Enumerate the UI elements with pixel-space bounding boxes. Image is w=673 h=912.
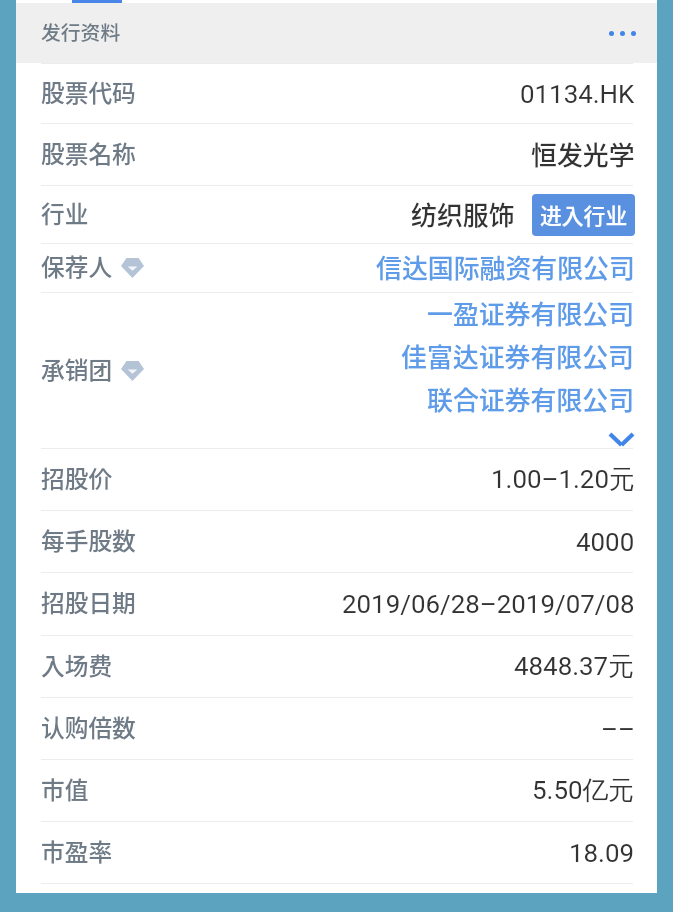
staticText: 纺织服饰 [411,195,515,233]
staticText: 保荐人 [41,249,113,283]
staticText: 招股日期 [41,585,136,619]
staticText: 招股价 [41,461,113,495]
staticText: 18.09 [569,838,635,868]
staticText: 进入行业 [540,199,628,231]
button[interactable]: 市值 [16,760,657,821]
button[interactable]: More options [609,31,657,36]
staticText: –– [601,714,635,744]
button[interactable]: 联合证券有限公司 [427,380,635,418]
staticText: 承销团 [41,352,113,386]
staticText: 市盈率 [41,834,113,868]
staticText: 每手股数 [41,523,136,557]
staticText: 入场费 [41,648,113,682]
staticText: 2019/06/28–2019/07/08 [342,589,635,619]
button[interactable]: 市盈率 [16,822,657,883]
staticText: 4000 [576,527,635,557]
staticText: 认购倍数 [41,710,136,744]
button[interactable]: 进入行业 [532,194,635,236]
button[interactable]: 每手股数 [16,511,657,572]
staticText: 股票名称 [41,136,136,170]
button[interactable]: 行业 [16,186,657,243]
staticText: 5.50亿元 [532,774,635,807]
button[interactable]: 保荐人 [16,244,657,292]
button[interactable]: Expand [608,432,635,447]
button[interactable]: 入场费 [16,636,657,697]
staticText: 01134.HK [520,79,635,109]
button[interactable]: 认购倍数 [16,698,657,759]
button[interactable]: 一盈证券有限公司 [427,294,635,332]
button[interactable]: 信达国际融资有限公司 [376,248,635,286]
button[interactable]: 招股价 [16,449,657,510]
button[interactable]: 佳富达证券有限公司 [401,337,635,375]
staticText: 发行资料 [41,17,121,46]
button[interactable]: 股票名称 [16,124,657,185]
staticText: 行业 [41,196,89,230]
staticText: 市值 [41,772,89,806]
staticText: 1.00–1.20元 [491,463,635,496]
staticText: 股票代码 [41,75,136,109]
button[interactable]: 股票代码 [16,64,657,123]
staticText: 恒发光学 [531,135,635,173]
staticText: 4848.37元 [514,650,635,683]
button[interactable]: 招股日期 [16,573,657,635]
